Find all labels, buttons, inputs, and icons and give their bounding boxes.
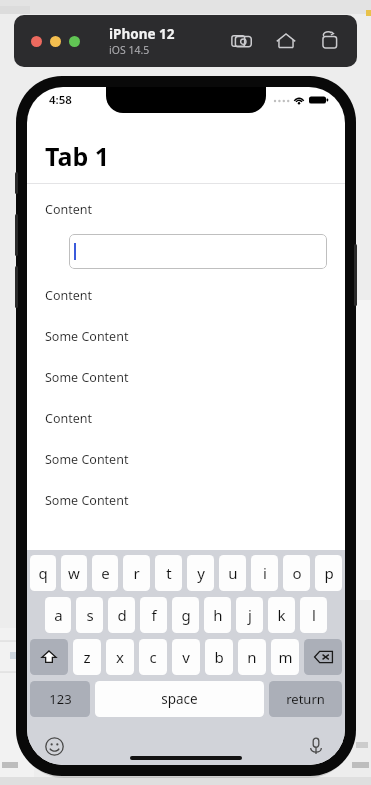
- button[interactable]: Some Content: [45, 369, 345, 386]
- button[interactable]: a: [45, 597, 71, 633]
- button[interactable]: Some Content: [45, 328, 345, 345]
- staticText: f: [151, 605, 157, 625]
- button[interactable]: x: [106, 639, 134, 675]
- button[interactable]: [69, 234, 327, 269]
- button[interactable]: Content: [45, 287, 345, 304]
- button[interactable]: Content: [45, 201, 345, 218]
- button[interactable]: return: [269, 681, 342, 717]
- staticText: v: [182, 647, 190, 667]
- button[interactable]: Zoom: [69, 36, 80, 47]
- button[interactable]: n: [238, 639, 266, 675]
- staticText: j: [248, 605, 252, 625]
- button[interactable]: d: [108, 597, 135, 633]
- button[interactable]: Close: [31, 36, 42, 47]
- staticText: c: [149, 647, 157, 667]
- button[interactable]: w: [61, 555, 87, 591]
- staticText: return: [286, 690, 325, 708]
- staticText: s: [86, 605, 94, 625]
- staticText: u: [228, 563, 238, 583]
- staticText: y: [197, 563, 205, 583]
- button[interactable]: Backspace: [304, 639, 342, 675]
- button[interactable]: Shift: [30, 639, 68, 675]
- button[interactable]: Home: [273, 28, 299, 54]
- button[interactable]: u: [219, 555, 246, 591]
- staticText: k: [277, 605, 286, 625]
- button[interactable]: Emoji keyboard: [41, 733, 67, 759]
- staticText: 4:58: [49, 92, 72, 108]
- staticText: Some Content: [45, 369, 129, 386]
- staticText: x: [116, 647, 124, 667]
- staticText: m: [278, 647, 293, 667]
- button[interactable]: v: [172, 639, 200, 675]
- button[interactable]: l: [300, 597, 327, 633]
- staticText: n: [247, 647, 257, 667]
- staticText: o: [292, 563, 302, 583]
- button[interactable]: b: [205, 639, 233, 675]
- staticText: g: [181, 605, 191, 625]
- button[interactable]: r: [123, 555, 150, 591]
- staticText: a: [54, 605, 63, 625]
- staticText: t: [166, 563, 172, 583]
- staticText: 123: [49, 690, 72, 708]
- button[interactable]: Some Content: [45, 492, 345, 509]
- staticText: Some Content: [45, 328, 129, 345]
- staticText: q: [38, 563, 48, 583]
- button[interactable]: Some Content: [45, 451, 345, 468]
- staticText: w: [68, 563, 80, 583]
- staticText: Content: [45, 287, 92, 304]
- button[interactable]: g: [172, 597, 199, 633]
- staticText: b: [214, 647, 224, 667]
- button[interactable]: t: [155, 555, 182, 591]
- button[interactable]: space: [95, 681, 264, 717]
- button[interactable]: Content: [45, 410, 345, 427]
- button[interactable]: Rotate: [317, 28, 343, 54]
- button[interactable]: o: [283, 555, 310, 591]
- staticText: iPhone 12: [109, 25, 175, 43]
- button[interactable]: s: [76, 597, 103, 633]
- button[interactable]: k: [268, 597, 295, 633]
- staticText: i: [263, 563, 267, 583]
- staticText: iOS 14.5: [109, 43, 150, 57]
- staticText: e: [101, 563, 110, 583]
- staticText: space: [161, 690, 198, 708]
- button[interactable]: Screenshot: [229, 28, 255, 54]
- button[interactable]: f: [140, 597, 167, 633]
- button[interactable]: i: [251, 555, 278, 591]
- staticText: Some Content: [45, 451, 129, 468]
- staticText: h: [213, 605, 223, 625]
- staticText: Tab 1: [45, 139, 110, 173]
- button[interactable]: e: [92, 555, 118, 591]
- staticText: r: [133, 563, 140, 583]
- button[interactable]: q: [30, 555, 56, 591]
- button[interactable]: y: [187, 555, 214, 591]
- staticText: Some Content: [45, 492, 129, 509]
- button[interactable]: 123: [30, 681, 90, 717]
- staticText: l: [312, 605, 316, 625]
- staticText: Content: [45, 201, 92, 218]
- button[interactable]: Minimize: [50, 36, 61, 47]
- button[interactable]: c: [139, 639, 167, 675]
- button[interactable]: Dictation: [303, 733, 329, 759]
- button[interactable]: h: [204, 597, 231, 633]
- staticText: z: [83, 647, 91, 667]
- staticText: d: [117, 605, 127, 625]
- button[interactable]: z: [73, 639, 101, 675]
- button[interactable]: m: [271, 639, 299, 675]
- staticText: p: [324, 563, 334, 583]
- button[interactable]: j: [236, 597, 263, 633]
- button[interactable]: p: [315, 555, 342, 591]
- staticText: Content: [45, 410, 92, 427]
